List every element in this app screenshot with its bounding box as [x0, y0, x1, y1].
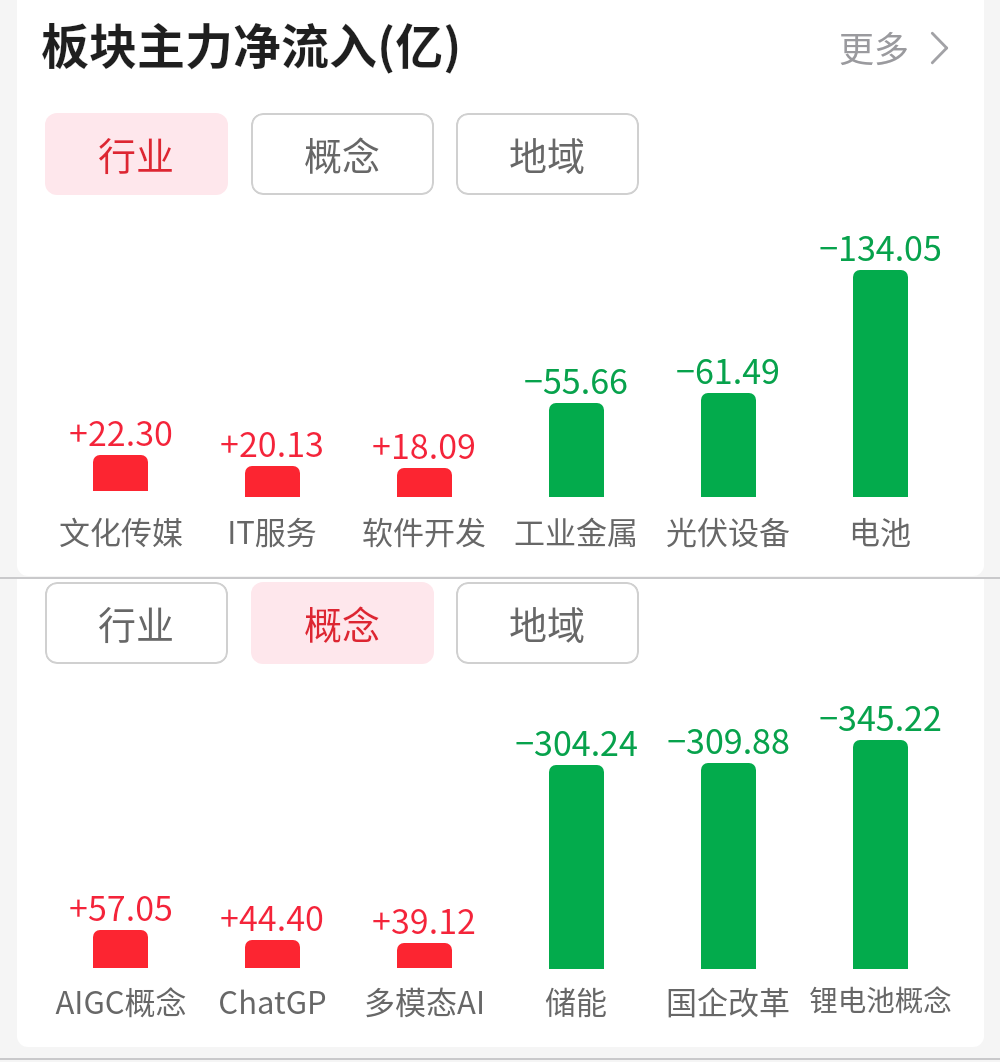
button[interactable] [805, 700, 955, 1014]
staticText: 概念 [304, 126, 381, 181]
button[interactable] [501, 700, 651, 1014]
staticText: 地域 [509, 595, 586, 650]
button[interactable]: 更多 [839, 15, 948, 77]
staticText: AIGC概念 [55, 978, 187, 1023]
button[interactable]: 概念 [251, 582, 434, 664]
staticText: 软件开发 [362, 508, 486, 553]
staticText: IT服务 [227, 508, 317, 553]
staticText: −309.88 [667, 715, 790, 764]
staticText: −55.66 [524, 355, 628, 404]
staticText: 电池 [849, 508, 911, 553]
button[interactable] [349, 230, 499, 544]
staticText: +39.12 [372, 895, 476, 944]
staticText: 概念 [304, 595, 381, 650]
staticText: 地域 [509, 126, 586, 181]
staticText: +44.40 [220, 892, 324, 941]
button[interactable] [46, 700, 196, 1014]
staticText: −345.22 [819, 692, 942, 741]
staticText: 多模态AI [364, 978, 485, 1023]
button[interactable] [197, 230, 347, 544]
staticText: 行业 [98, 126, 175, 181]
staticText: −61.49 [676, 345, 780, 394]
button[interactable] [197, 700, 347, 1014]
staticText: 国企改革 [666, 978, 790, 1023]
staticText: ChatGP [218, 978, 327, 1023]
staticText: +18.09 [372, 420, 476, 469]
button[interactable]: 行业 [45, 582, 228, 664]
button[interactable] [653, 230, 803, 544]
staticText: 文化传媒 [59, 508, 183, 553]
button[interactable] [653, 700, 803, 1014]
staticText: +20.13 [220, 418, 324, 467]
staticText: −134.05 [819, 222, 942, 271]
staticText: +57.05 [69, 882, 173, 931]
staticText: 锂电池概念 [809, 978, 952, 1019]
button[interactable]: 行业 [45, 113, 228, 195]
button[interactable] [349, 700, 499, 1014]
staticText: 板块主力净流入(亿) [41, 8, 462, 78]
button[interactable]: 概念 [251, 113, 434, 195]
button[interactable]: 地域 [456, 113, 639, 195]
button[interactable] [46, 230, 196, 544]
staticText: 储能 [545, 978, 607, 1023]
other: More [931, 32, 948, 64]
button[interactable] [501, 230, 651, 544]
staticText: 行业 [98, 595, 175, 650]
staticText: 光伏设备 [666, 508, 790, 553]
staticText: 工业金属 [514, 508, 638, 553]
button[interactable]: 地域 [456, 582, 639, 664]
staticText: +22.30 [69, 407, 173, 456]
staticText: 更多 [839, 21, 910, 72]
button[interactable] [805, 230, 955, 544]
staticText: −304.24 [515, 717, 638, 766]
